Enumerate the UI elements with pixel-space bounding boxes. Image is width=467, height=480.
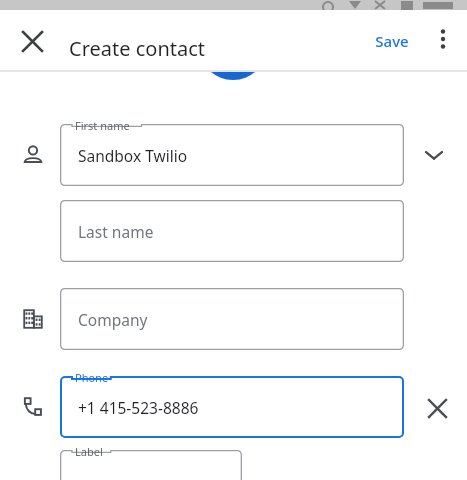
button[interactable]: Close [10, 19, 54, 63]
staticText: +1 415-523-8886 [78, 397, 199, 418]
button[interactable]: Phone [60, 376, 404, 438]
button[interactable]: Last name [60, 200, 404, 262]
button[interactable]: First name [60, 124, 404, 186]
button[interactable]: Clear phone number [416, 387, 458, 429]
button[interactable]: Label [60, 450, 242, 480]
button[interactable]: Expand name fields [414, 135, 454, 175]
staticText: First name [75, 118, 130, 133]
button[interactable]: Save [364, 23, 420, 59]
staticText: Phone [75, 370, 109, 385]
staticText: Last name [78, 221, 154, 242]
staticText: Label [75, 444, 103, 459]
staticText: Company [78, 309, 148, 330]
staticText: Save [375, 31, 409, 51]
staticText: Create contact [69, 35, 206, 62]
button[interactable]: Company [60, 288, 404, 350]
button[interactable]: More options [423, 19, 463, 59]
staticText: Sandbox Twilio [78, 145, 188, 166]
